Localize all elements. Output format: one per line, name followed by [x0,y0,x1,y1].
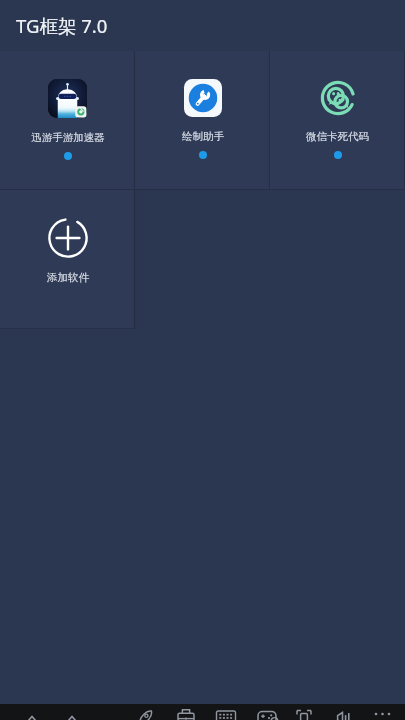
staticText: 添加软件 [47,271,89,284]
button[interactable]: 绘制助手 [135,51,270,190]
button[interactable]: 微信卡死代码 [270,51,405,190]
staticText: TG框架 7.0 [16,13,108,38]
button[interactable]: 添加软件 [0,190,135,329]
button[interactable]: 迅游手游加速器 [0,51,135,190]
other: System navigation [0,704,405,720]
staticText: 迅游手游加速器 [31,131,105,144]
staticText: 微信卡死代码 [306,130,369,143]
staticText: 绘制助手 [182,130,224,143]
